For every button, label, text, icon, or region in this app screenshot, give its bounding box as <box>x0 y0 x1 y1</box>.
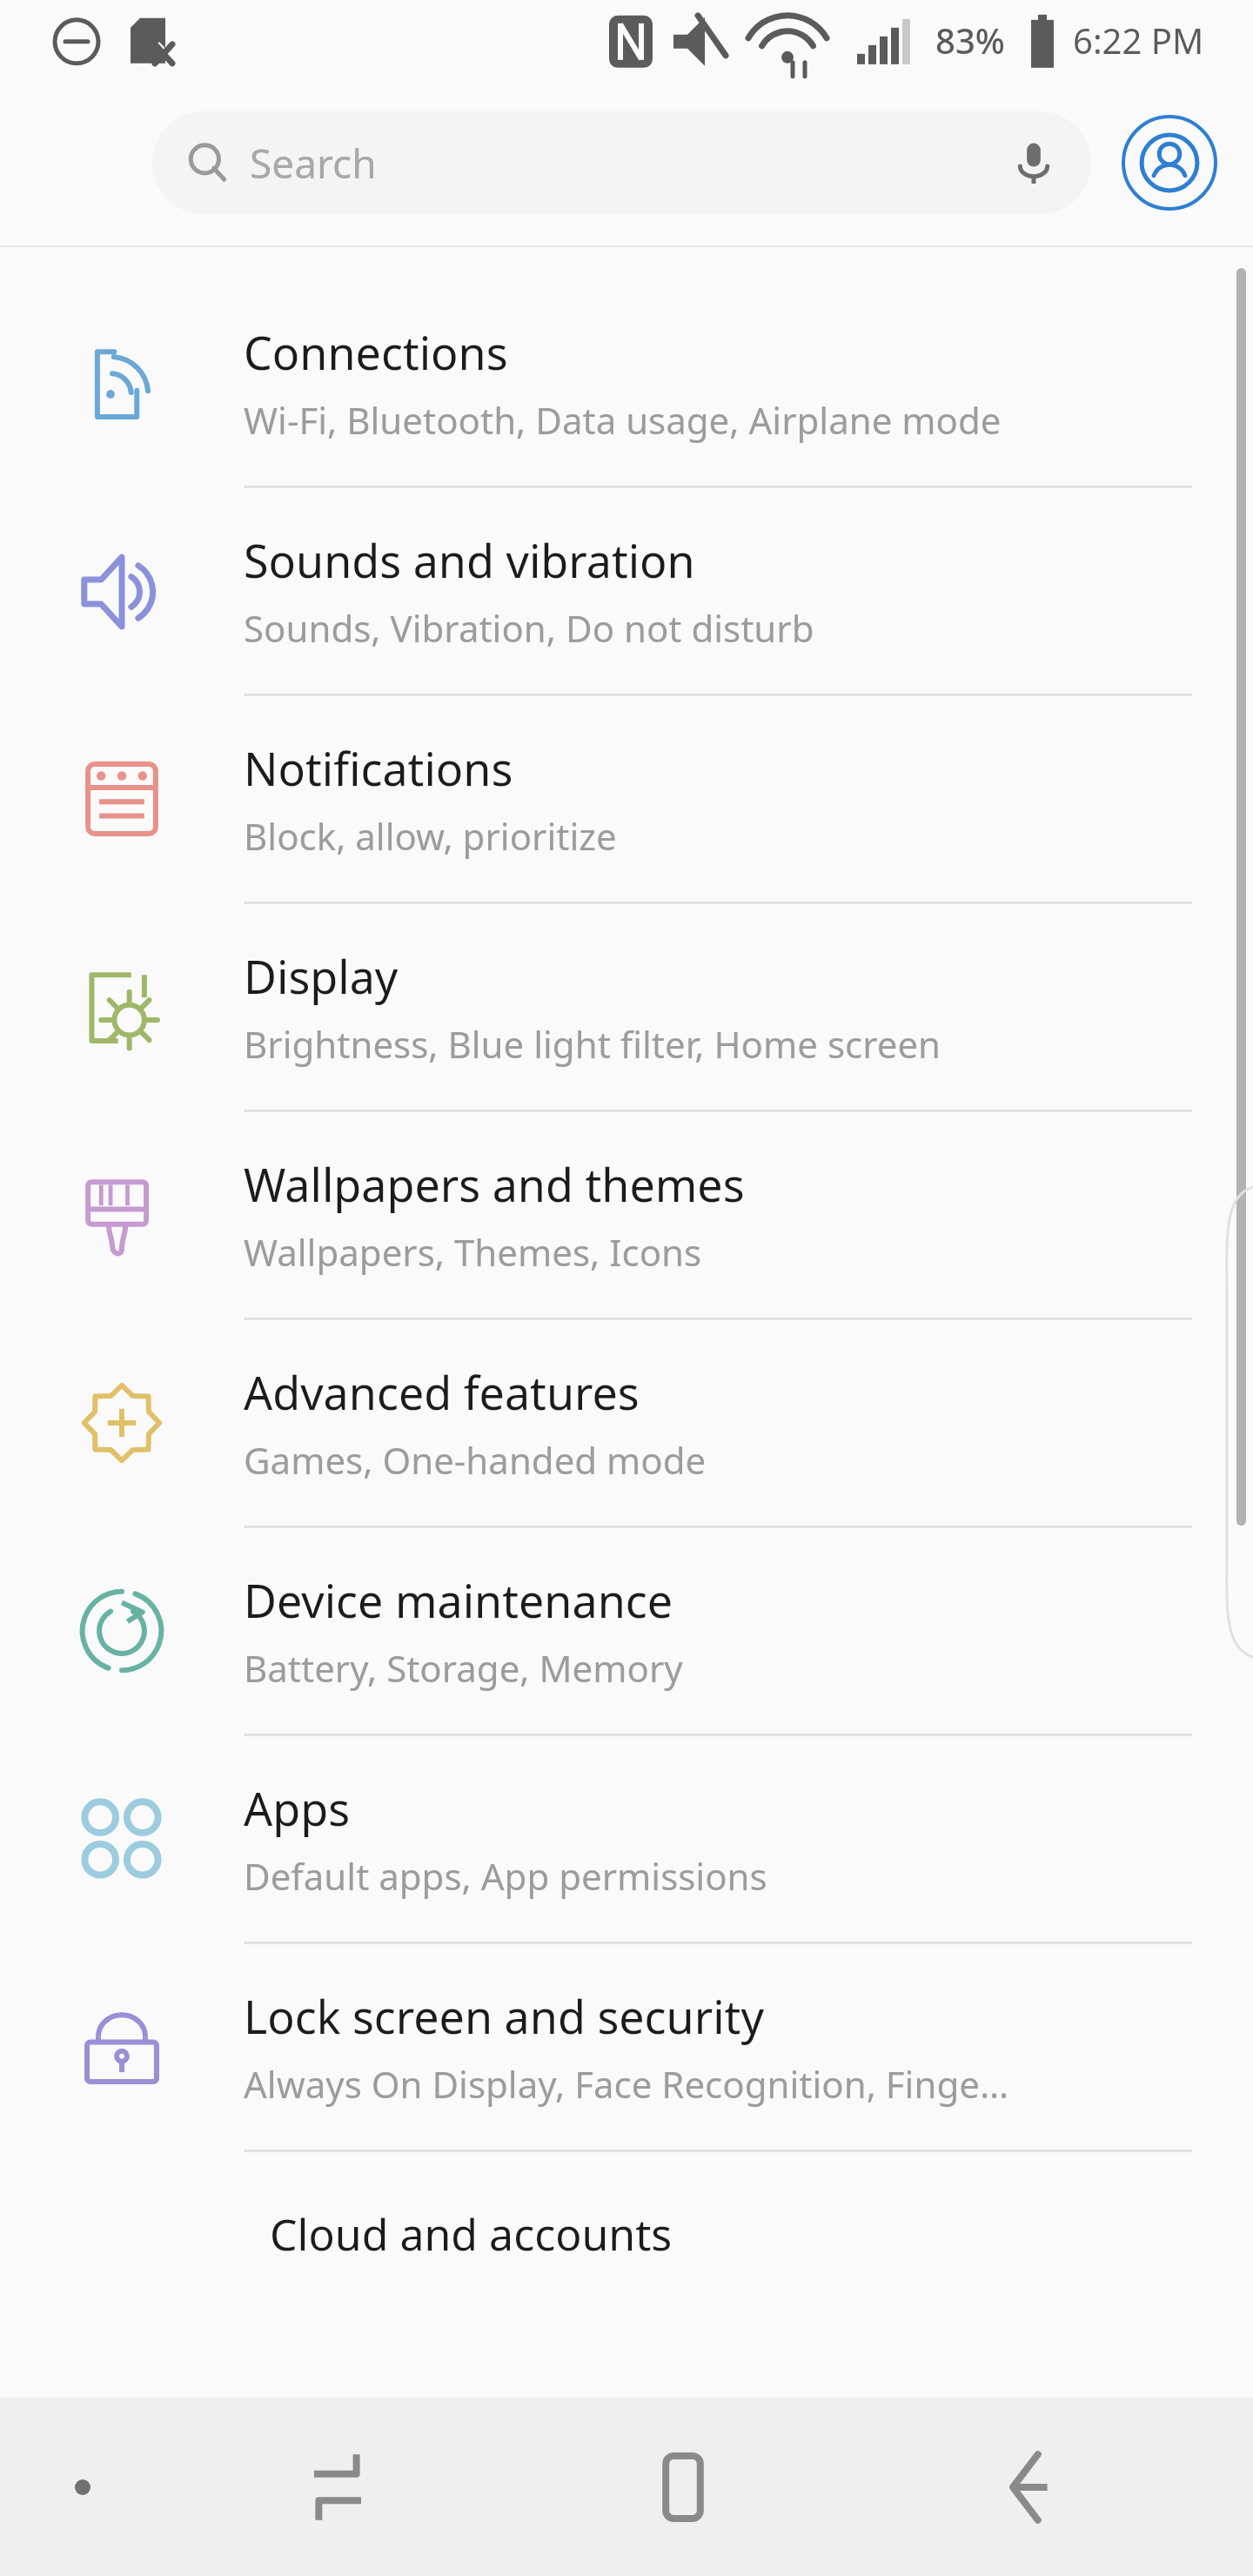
staticText: Always On Display, Face Recognition, Fin… <box>244 2059 1009 2109</box>
staticText: 83% <box>935 17 1005 64</box>
staticText: Sounds, Vibration, Do not disturb <box>244 603 814 653</box>
staticText: Games, One-handed mode <box>244 1435 707 1485</box>
staticText: Block, allow, prioritize <box>244 811 617 861</box>
staticText: Advanced features <box>244 1361 640 1423</box>
staticText: 6:22 PM <box>1073 17 1204 64</box>
staticText: Notifications <box>244 737 513 799</box>
staticText: Default apps, App permissions <box>244 1851 767 1901</box>
button[interactable]: Apps <box>0 1736 1253 1944</box>
button[interactable]: Samsung account <box>1121 114 1218 211</box>
button[interactable]: Wallpapers and themes <box>0 1112 1253 1320</box>
staticText: Wallpapers, Themes, Icons <box>244 1227 702 1277</box>
staticText: Brightness, Blue light filter, Home scre… <box>244 1019 941 1069</box>
button[interactable]: Advanced features <box>0 1320 1253 1528</box>
staticText: Wi-Fi, Bluetooth, Data usage, Airplane m… <box>244 395 1002 445</box>
staticText: Battery, Storage, Memory <box>244 1643 683 1693</box>
staticText: Display <box>244 945 399 1007</box>
button[interactable]: Search <box>152 111 1091 214</box>
staticText: Device maintenance <box>244 1569 673 1631</box>
button[interactable]: Back <box>855 2398 1201 2576</box>
button[interactable]: Sounds and vibration <box>0 488 1253 696</box>
button[interactable]: Recents <box>165 2398 510 2576</box>
staticText: Search <box>250 136 377 191</box>
staticText: Sounds and vibration <box>244 529 695 591</box>
staticText: Apps <box>244 1777 351 1839</box>
button[interactable]: Connections <box>0 280 1253 488</box>
button[interactable]: Lock screen and security <box>0 1944 1253 2152</box>
button[interactable]: Voice search <box>1009 138 1058 187</box>
button[interactable]: Home <box>510 2398 855 2576</box>
button[interactable]: Notifications <box>0 696 1253 904</box>
staticText: Connections <box>244 321 508 383</box>
button[interactable]: Cloud and accounts <box>0 2204 1253 2274</box>
button[interactable]: Device maintenance <box>0 1528 1253 1736</box>
staticText: Wallpapers and themes <box>244 1153 745 1215</box>
button[interactable]: Display <box>0 904 1253 1112</box>
staticText: Cloud and accounts <box>270 2204 673 2264</box>
staticText: Lock screen and security <box>244 1985 764 2047</box>
